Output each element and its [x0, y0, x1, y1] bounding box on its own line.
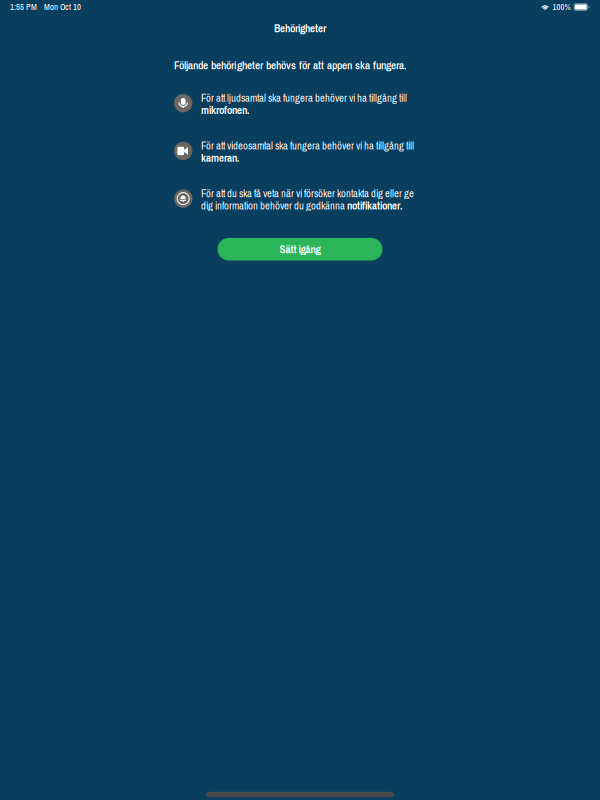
staticText: För att videosamtal ska fungera behöver …: [201, 138, 414, 165]
staticText: 100%: [553, 1, 571, 13]
staticText: Behörigheter: [274, 21, 326, 36]
staticText: Sätt igång: [279, 242, 320, 256]
button[interactable]: Sätt igång: [217, 238, 382, 260]
staticText: För att ljudsamtal ska fungera behöver v…: [201, 91, 407, 117]
staticText: 1:55 PM: [10, 1, 37, 13]
staticText: Följande behörigheter behövs för att app…: [174, 58, 407, 73]
staticText: För att du ska få veta när vi försöker k…: [201, 186, 414, 213]
staticText: Mon Oct 10: [44, 1, 81, 13]
